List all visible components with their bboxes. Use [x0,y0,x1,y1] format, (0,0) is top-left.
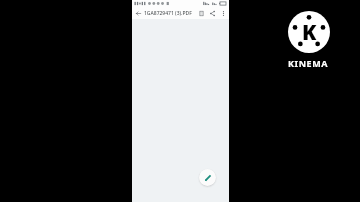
staticText: KINEMASTER [288,57,330,69]
button[interactable]: Navigate up [132,7,144,19]
staticText: 1GA8729471 (3).PDF [144,10,196,17]
button[interactable]: More options [218,8,228,18]
staticText: K [302,18,317,47]
button[interactable]: Page view [196,8,207,19]
button[interactable]: Share [207,8,218,19]
button[interactable]: Edit [199,169,216,186]
